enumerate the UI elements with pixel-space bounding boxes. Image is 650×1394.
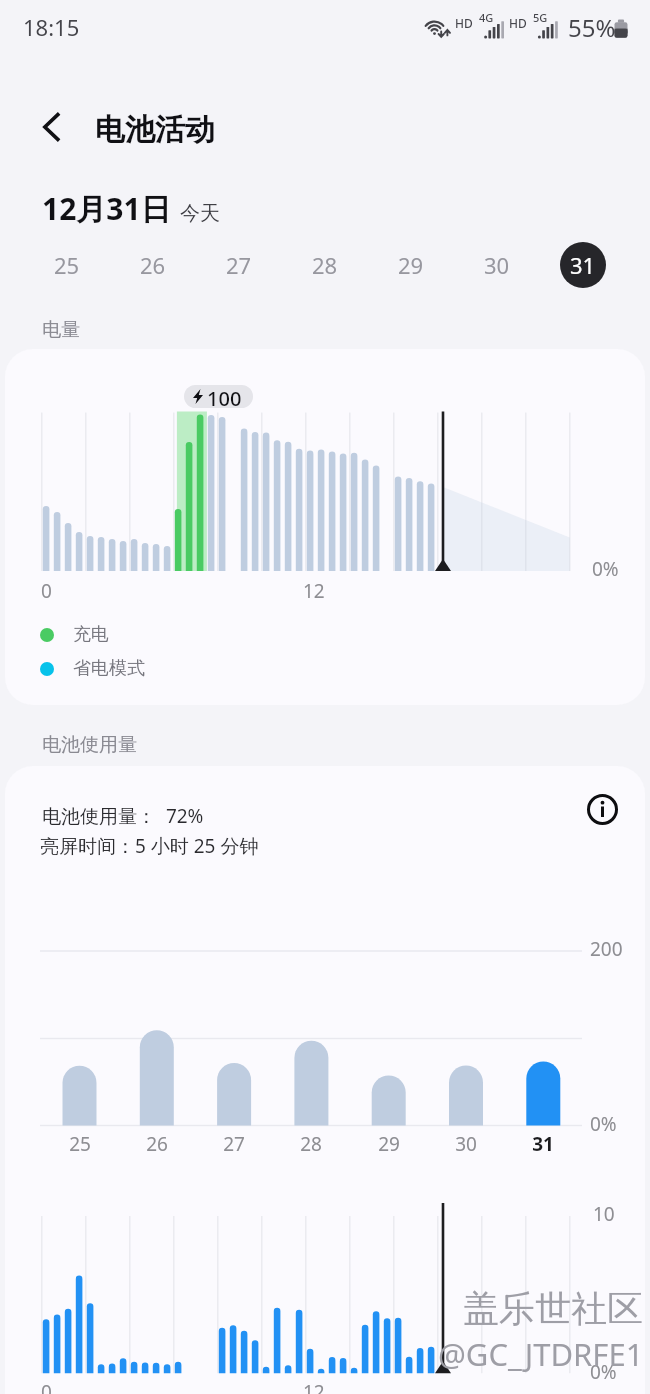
staticText: 10 (593, 1201, 615, 1227)
staticText: 省电模式 (73, 657, 145, 680)
button[interactable]: 29 (388, 242, 434, 288)
staticText: 今天 (180, 201, 220, 226)
staticText: 电量 (42, 318, 80, 342)
staticText: HD (455, 15, 473, 31)
staticText: 29 (364, 1131, 414, 1157)
staticText: 26 (132, 1131, 182, 1157)
staticText: 盖乐世社区 (463, 1286, 643, 1331)
staticText: 电池活动 (95, 111, 215, 149)
button[interactable]: 电池使用量： 72% (5, 766, 645, 1394)
staticText: 30 (441, 1131, 491, 1157)
staticText: 28 (312, 250, 338, 280)
staticText: 12 (303, 1379, 325, 1394)
staticText: 电池使用量 (42, 733, 137, 757)
staticText: 26 (140, 250, 166, 280)
staticText: 0 (41, 578, 52, 604)
staticText: 18:15 (23, 12, 80, 42)
staticText: 55% (568, 11, 616, 44)
staticText: 25 (55, 1131, 105, 1157)
button[interactable]: 26 (130, 242, 176, 288)
staticText: 充电 (73, 623, 109, 646)
staticText: 31 (570, 250, 596, 280)
staticText: 0 (41, 1379, 52, 1394)
staticText: 5G (533, 10, 548, 25)
button[interactable]: 返回 (24, 98, 82, 156)
staticText: 30 (484, 250, 510, 280)
staticText: 12 (303, 578, 325, 604)
staticText: 0% (592, 556, 619, 582)
staticText: 27 (209, 1131, 259, 1157)
staticText: 200 (590, 936, 623, 962)
staticText: 亮屏时间：5 小时 25 分钟 (40, 833, 259, 859)
button[interactable]: 30 (474, 242, 520, 288)
staticText: 25 (54, 250, 80, 280)
staticText: 29 (398, 250, 424, 280)
button[interactable]: 25 (44, 242, 90, 288)
staticText: 27 (226, 250, 252, 280)
staticText: 100 (207, 385, 242, 408)
staticText: 12月31日 (42, 188, 171, 229)
button[interactable]: 100 (5, 349, 645, 705)
staticText: 4G (479, 10, 494, 25)
staticText: 0% (590, 1359, 617, 1385)
button[interactable]: 31 (560, 242, 606, 288)
staticText: 31 (518, 1131, 568, 1157)
button[interactable]: 28 (302, 242, 348, 288)
staticText: 28 (286, 1131, 336, 1157)
button[interactable]: 27 (216, 242, 262, 288)
staticText: @GC_JTDRFE1 (438, 1333, 644, 1375)
staticText: HD (509, 15, 527, 31)
staticText: 电池使用量： 72% (42, 803, 204, 829)
button[interactable]: 信息 (570, 777, 634, 841)
staticText: 0% (590, 1111, 617, 1137)
